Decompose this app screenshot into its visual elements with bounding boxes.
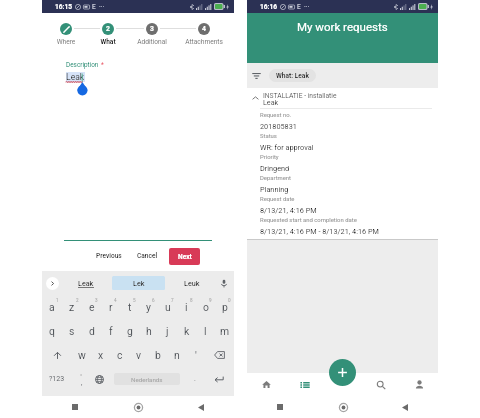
button[interactable]: l	[196, 319, 215, 343]
staticText: q	[49, 325, 55, 337]
staticText: Department	[260, 175, 292, 182]
button[interactable]: Attachments	[198, 23, 210, 35]
button[interactable]: '	[186, 343, 205, 367]
staticText: INSTALLATIE - installatie	[263, 92, 337, 98]
button[interactable]: f	[101, 319, 120, 343]
staticText: 8	[190, 298, 193, 303]
staticText: o	[203, 301, 209, 313]
button[interactable]: Enter	[204, 367, 234, 391]
button[interactable]: Home	[336, 400, 350, 414]
staticText: Leak	[66, 72, 85, 82]
button[interactable]: Back	[398, 400, 412, 414]
staticText: f	[109, 325, 113, 337]
button[interactable]: z	[62, 295, 82, 319]
staticText: Requested start and completion date	[260, 217, 357, 224]
button[interactable]: b	[148, 343, 167, 367]
button[interactable]: What: Leak	[269, 69, 316, 82]
button[interactable]: Collapse	[249, 92, 261, 104]
button[interactable]: s	[62, 319, 82, 343]
staticText: Description	[66, 61, 99, 69]
button[interactable]: Change language	[90, 367, 108, 391]
staticText: Status	[260, 133, 277, 140]
button[interactable]: Recent apps	[68, 400, 82, 414]
staticText: Cancel	[137, 252, 158, 260]
button[interactable]: q	[42, 319, 62, 343]
button[interactable]: Filter	[250, 69, 263, 82]
button[interactable]: d	[82, 319, 101, 343]
staticText: Leak	[263, 98, 279, 106]
button[interactable]: m	[215, 319, 234, 343]
button[interactable]: c	[110, 343, 129, 367]
button[interactable]: Where	[60, 23, 72, 35]
button[interactable]: More suggestions	[46, 277, 59, 290]
button[interactable]: p	[215, 295, 234, 319]
button[interactable]: a	[42, 295, 62, 319]
staticText: Next	[178, 253, 192, 261]
staticText: 6	[152, 298, 155, 303]
staticText: Additional	[122, 38, 182, 46]
button[interactable]: w	[72, 343, 91, 367]
button[interactable]: °	[72, 367, 90, 391]
staticText: i	[185, 301, 188, 313]
button[interactable]: Backspace	[205, 343, 234, 367]
button[interactable]: u	[158, 295, 177, 319]
staticText: ?123	[49, 375, 65, 383]
button[interactable]: g	[120, 319, 139, 343]
button[interactable]: Cancel	[132, 248, 163, 264]
staticText: c	[117, 349, 123, 361]
staticText: s	[69, 325, 75, 337]
button[interactable]: What	[102, 23, 114, 35]
staticText: y	[146, 301, 151, 313]
staticText: 3	[95, 298, 98, 303]
staticText: WR: for approval	[260, 143, 314, 152]
button[interactable]: Home	[131, 400, 145, 414]
button[interactable]: ?123	[42, 367, 72, 391]
staticText: Request no.	[260, 112, 292, 119]
button[interactable]: Profile	[400, 373, 438, 396]
staticText: .	[194, 375, 196, 383]
button[interactable]: Nederlands	[114, 373, 180, 385]
button[interactable]: Search	[362, 373, 400, 396]
staticText: What	[78, 38, 138, 46]
button[interactable]: t	[120, 295, 139, 319]
button[interactable]: x	[91, 343, 110, 367]
button[interactable]: Back	[194, 400, 208, 414]
staticText: ,	[81, 379, 83, 387]
button[interactable]: Previous	[91, 248, 127, 264]
button[interactable]: o	[196, 295, 215, 319]
button[interactable]: Voice input	[218, 277, 230, 289]
button[interactable]: Recent apps	[273, 400, 287, 414]
button[interactable]: Next	[169, 248, 200, 265]
staticText: What: Leak	[276, 72, 309, 80]
staticText: 2	[106, 25, 110, 33]
button[interactable]: e	[82, 295, 101, 319]
staticText: °	[80, 372, 83, 379]
button[interactable]: Shift	[42, 343, 72, 367]
button[interactable]: j	[158, 319, 177, 343]
button[interactable]: h	[139, 319, 158, 343]
button[interactable]: k	[177, 319, 196, 343]
button[interactable]: Work requests	[286, 373, 324, 396]
button[interactable]: y	[139, 295, 158, 319]
button[interactable]: i	[177, 295, 196, 319]
staticText: '	[195, 349, 197, 361]
button[interactable]: v	[129, 343, 148, 367]
staticText: Leuk	[184, 279, 200, 287]
button[interactable]: Add work request	[329, 359, 356, 386]
button[interactable]: n	[167, 343, 186, 367]
staticText: t	[128, 301, 132, 313]
button[interactable]: Home	[247, 373, 286, 396]
staticText: 201805831	[260, 122, 297, 131]
staticText: 4	[202, 25, 206, 33]
staticText: Attachments	[174, 38, 234, 46]
staticText: k	[184, 325, 190, 337]
staticText: e	[89, 301, 95, 313]
staticText: E	[297, 3, 301, 11]
button[interactable]: r	[101, 295, 120, 319]
button[interactable]: Additional	[146, 23, 158, 35]
staticText: Previous	[96, 252, 122, 260]
button[interactable]: Lek	[112, 276, 165, 290]
staticText: 7	[171, 298, 174, 303]
staticText: 8/13/21, 4:16 PM	[260, 206, 317, 215]
